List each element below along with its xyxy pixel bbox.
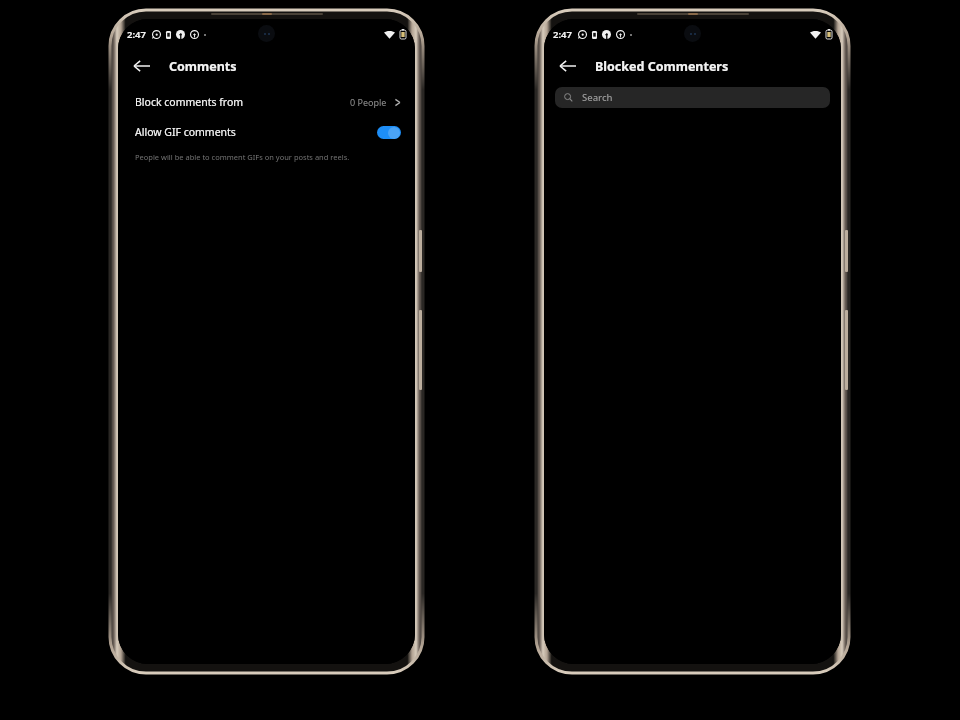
button[interactable]: Back [553, 52, 581, 80]
staticText: Allow GIF comments [135, 125, 236, 139]
staticText: Block comments from [135, 95, 244, 109]
staticText: 0 People [350, 96, 387, 108]
button[interactable]: Allow GIF comments [118, 119, 415, 145]
button[interactable]: Allow GIF comments toggle [377, 126, 401, 139]
staticText: Search [582, 91, 613, 104]
button[interactable]: Block comments from [118, 89, 415, 115]
button[interactable]: Back [127, 52, 155, 80]
staticText: 2:47 [553, 28, 572, 41]
button[interactable]: Search [555, 87, 830, 108]
staticText: Comments [169, 58, 237, 75]
staticText: People will be able to comment GIFs on y… [135, 152, 350, 162]
staticText: Blocked Commenters [595, 58, 729, 75]
staticText: 2:47 [127, 28, 146, 41]
